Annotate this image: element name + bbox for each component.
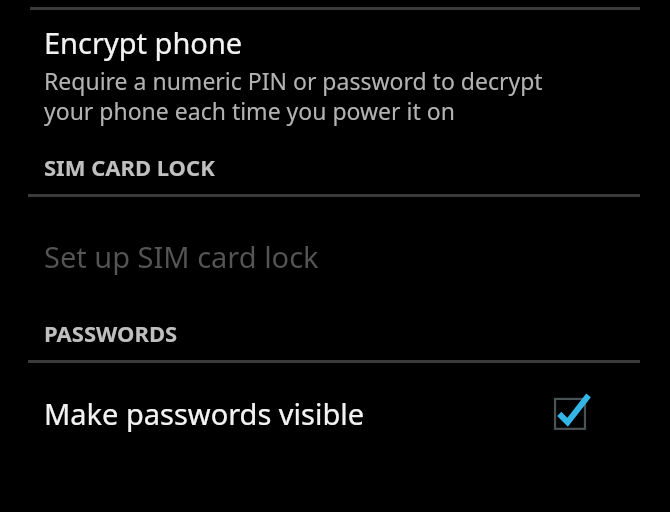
staticText: Make passwords visible (44, 394, 548, 433)
other: Make passwords visible checkbox (548, 391, 592, 435)
button[interactable]: Set up SIM card lock (0, 197, 670, 286)
staticText: Require a numeric PIN or password to dec… (44, 65, 543, 126)
button[interactable]: Make passwords visible (0, 363, 670, 449)
staticText: SIM CARD LOCK (44, 152, 215, 182)
staticText: PASSWORDS (44, 318, 178, 348)
staticText: Set up SIM card lock (44, 237, 319, 276)
button[interactable]: Encrypt phone (0, 10, 670, 134)
staticText: Encrypt phone (44, 23, 243, 62)
